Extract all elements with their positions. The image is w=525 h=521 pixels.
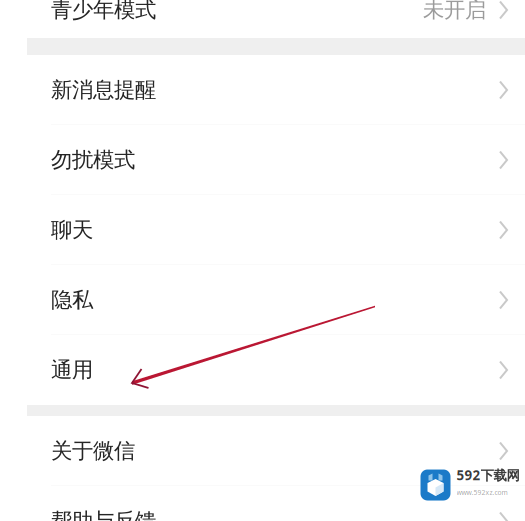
button[interactable]: 勿扰模式 bbox=[0, 125, 525, 195]
staticText: 关于微信 bbox=[51, 438, 135, 464]
button[interactable]: 帮助与反馈 bbox=[0, 486, 525, 521]
button[interactable]: 新消息提醒 bbox=[0, 55, 525, 125]
staticText: 592下载网 bbox=[456, 466, 519, 484]
button[interactable]: 青少年模式 bbox=[0, 0, 525, 38]
button[interactable]: 聊天 bbox=[0, 195, 525, 265]
staticText: 勿扰模式 bbox=[51, 147, 135, 173]
staticText: 未开启 bbox=[423, 0, 486, 23]
staticText: 帮助与反馈 bbox=[51, 508, 156, 521]
staticText: 聊天 bbox=[51, 217, 93, 243]
button[interactable]: 关于微信 bbox=[0, 416, 525, 486]
staticText: 通用 bbox=[51, 357, 93, 383]
staticText: www.592xz.com bbox=[456, 488, 507, 497]
button[interactable]: 隐私 bbox=[0, 265, 525, 335]
staticText: 青少年模式 bbox=[51, 0, 156, 23]
staticText: 隐私 bbox=[51, 287, 93, 313]
staticText: 新消息提醒 bbox=[51, 77, 156, 103]
button[interactable]: 通用 bbox=[0, 335, 525, 405]
